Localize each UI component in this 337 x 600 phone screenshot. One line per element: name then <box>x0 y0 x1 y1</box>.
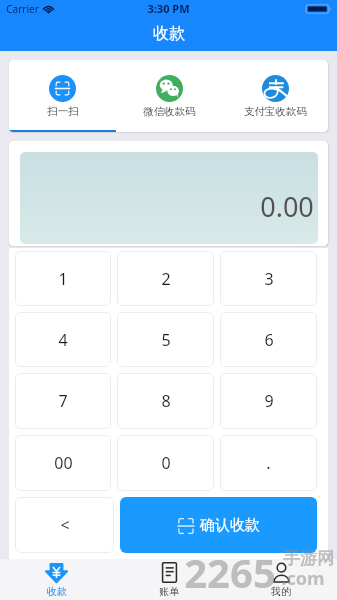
staticText: 支付宝收款码 <box>244 105 307 118</box>
button[interactable]: 3 <box>220 251 317 306</box>
staticText: 5 <box>161 329 171 351</box>
button[interactable]: . <box>220 435 317 491</box>
button[interactable]: 支付宝收款码 <box>222 60 328 132</box>
button[interactable]: 6 <box>220 312 317 367</box>
button[interactable]: 扫一扫 <box>9 60 116 132</box>
staticText: .com <box>281 566 325 591</box>
staticText: 3:30 PM <box>147 1 190 16</box>
staticText: 我的 <box>271 585 291 598</box>
button[interactable]: 9 <box>220 373 317 429</box>
staticText: 8 <box>161 390 171 412</box>
staticText: 2 <box>161 268 171 290</box>
staticText: 4 <box>58 329 68 351</box>
staticText: 1 <box>58 268 68 290</box>
staticText: 6 <box>264 329 274 351</box>
staticText: 账单 <box>159 585 179 598</box>
button[interactable]: 4 <box>15 312 111 367</box>
button[interactable]: 0.00 <box>20 168 314 244</box>
button[interactable]: 账单 <box>113 559 225 600</box>
staticText: 3 <box>264 268 274 290</box>
button[interactable]: 收款 <box>0 559 113 600</box>
button[interactable]: 我的 <box>225 559 337 600</box>
staticText: 确认收款 <box>200 516 260 535</box>
staticText: 2265 <box>184 545 276 599</box>
staticText: . <box>266 452 271 474</box>
button[interactable]: 确认收款 <box>120 497 317 553</box>
staticText: 微信收款码 <box>143 105 196 118</box>
staticText: 0.00 <box>260 188 314 225</box>
button[interactable]: 00 <box>15 435 111 491</box>
staticText: < <box>60 514 70 536</box>
button[interactable]: 微信收款码 <box>116 60 222 132</box>
staticText: 00 <box>54 452 73 474</box>
staticText: 0 <box>161 452 171 474</box>
staticText: 收款 <box>153 24 185 44</box>
button[interactable]: 5 <box>117 312 214 367</box>
button[interactable]: 7 <box>15 373 111 429</box>
staticText: 收款 <box>47 585 67 598</box>
staticText: 手游网 <box>283 548 334 569</box>
staticText: Carrier <box>6 2 39 16</box>
button[interactable]: 2 <box>117 251 214 306</box>
staticText: 扫一扫 <box>47 105 79 118</box>
button[interactable]: 1 <box>15 251 111 306</box>
button[interactable]: 0 <box>117 435 214 491</box>
button[interactable]: 8 <box>117 373 214 429</box>
button[interactable]: < <box>15 497 114 553</box>
staticText: 9 <box>264 390 274 412</box>
staticText: 7 <box>58 390 68 412</box>
